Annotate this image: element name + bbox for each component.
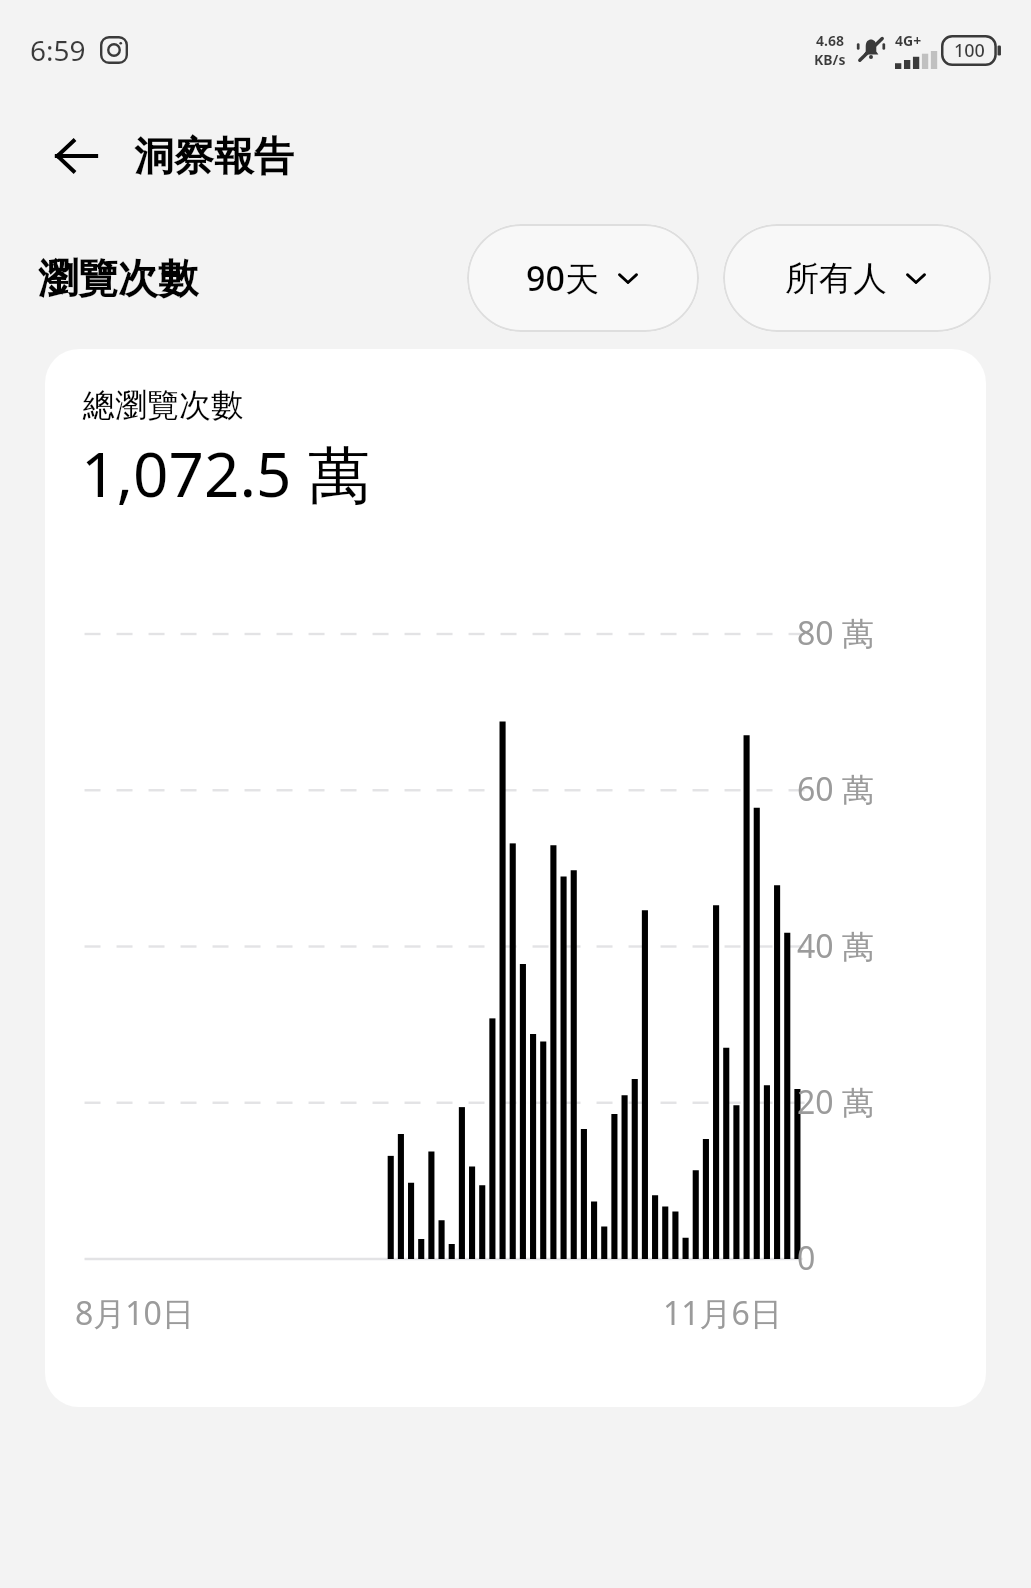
staticText: 11月6日 bbox=[663, 1291, 782, 1335]
staticText: 20 萬 bbox=[797, 1080, 874, 1124]
staticText: 60 萬 bbox=[797, 767, 874, 811]
button[interactable]: Back bbox=[38, 118, 114, 194]
staticText: 所有人 bbox=[785, 257, 887, 300]
staticText: 4.68 bbox=[816, 31, 844, 50]
staticText: 洞察報告 bbox=[134, 131, 294, 181]
staticText: 0 bbox=[797, 1236, 816, 1280]
staticText: 40 萬 bbox=[797, 924, 874, 968]
staticText: 8月10日 bbox=[75, 1291, 194, 1335]
staticText: 瀏覽次數 bbox=[38, 253, 198, 303]
button[interactable]: 所有人 bbox=[723, 224, 991, 332]
staticText: 100 bbox=[954, 38, 985, 63]
staticText: 總瀏覽次數 bbox=[83, 385, 243, 425]
staticText: 80 萬 bbox=[797, 611, 874, 655]
staticText: KB/s bbox=[814, 50, 846, 69]
staticText: 4G+ bbox=[895, 31, 922, 50]
staticText: 1,072.5 萬 bbox=[81, 431, 370, 516]
button[interactable]: 總瀏覽次數 bbox=[45, 349, 986, 1407]
button[interactable]: 90天 bbox=[467, 224, 699, 332]
staticText: 90天 bbox=[526, 255, 599, 301]
staticText: 6:59 bbox=[30, 31, 86, 69]
